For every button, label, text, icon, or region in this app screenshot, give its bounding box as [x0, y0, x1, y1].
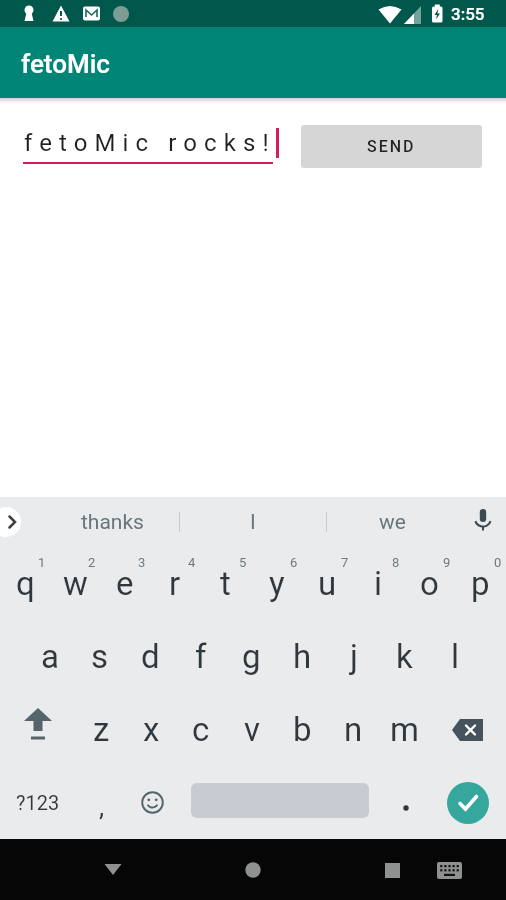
- staticText: 4: [188, 555, 196, 570]
- button[interactable]: a: [25, 620, 75, 693]
- staticText: I: [250, 510, 256, 535]
- staticText: q: [16, 564, 35, 603]
- staticText: w: [63, 564, 88, 603]
- button[interactable]: m: [379, 693, 430, 766]
- button[interactable]: n: [328, 693, 379, 766]
- staticText: 0: [494, 555, 502, 570]
- button[interactable]: [431, 766, 506, 839]
- button[interactable]: q: [0, 547, 50, 620]
- staticText: v: [244, 710, 260, 749]
- staticText: ,: [99, 792, 105, 822]
- staticText: t: [220, 564, 231, 603]
- staticText: u: [318, 564, 337, 603]
- staticText: y: [269, 564, 285, 603]
- button[interactable]: t: [200, 547, 251, 620]
- staticText: 5: [239, 555, 247, 570]
- staticText: ?123: [16, 791, 60, 814]
- button[interactable]: [430, 693, 506, 766]
- button[interactable]: h: [277, 620, 328, 693]
- staticText: a: [41, 637, 59, 676]
- button[interactable]: x: [126, 693, 176, 766]
- staticText: i: [374, 564, 383, 603]
- button[interactable]: [0, 497, 30, 547]
- staticText: 6: [290, 555, 298, 570]
- button[interactable]: [437, 862, 462, 879]
- button[interactable]: w: [50, 547, 100, 620]
- staticText: 3:55: [451, 4, 485, 24]
- button[interactable]: i: [353, 547, 404, 620]
- button[interactable]: b: [277, 693, 328, 766]
- staticText: e: [116, 564, 134, 603]
- staticText: b: [293, 710, 312, 749]
- staticText: l: [451, 637, 460, 676]
- button[interactable]: thanks: [62, 497, 162, 547]
- button[interactable]: SEND: [301, 125, 482, 168]
- button[interactable]: [178, 766, 380, 839]
- staticText: 8: [392, 555, 400, 570]
- staticText: s: [91, 637, 109, 676]
- button[interactable]: c: [176, 693, 226, 766]
- button[interactable]: r: [150, 547, 200, 620]
- button[interactable]: o: [404, 547, 455, 620]
- staticText: o: [420, 564, 439, 603]
- button[interactable]: z: [76, 693, 126, 766]
- button[interactable]: y: [251, 547, 302, 620]
- staticText: h: [293, 637, 312, 676]
- staticText: x: [143, 710, 160, 749]
- staticText: n: [344, 710, 363, 749]
- button[interactable]: f: [175, 620, 226, 693]
- staticText: k: [396, 637, 413, 676]
- staticText: f: [195, 637, 207, 676]
- staticText: 1: [38, 555, 46, 570]
- button[interactable]: k: [379, 620, 430, 693]
- button[interactable]: l: [430, 620, 481, 693]
- staticText: 2: [88, 555, 96, 570]
- staticText: g: [242, 637, 261, 676]
- button[interactable]: p: [455, 547, 506, 620]
- button[interactable]: [104, 864, 122, 876]
- button[interactable]: [245, 862, 261, 878]
- staticText: SEND: [367, 137, 416, 156]
- staticText: m: [390, 710, 419, 749]
- staticText: z: [93, 710, 110, 749]
- button[interactable]: g: [226, 620, 277, 693]
- button[interactable]: u: [302, 547, 353, 620]
- button[interactable]: [23, 125, 273, 164]
- button[interactable]: j: [328, 620, 379, 693]
- staticText: j: [350, 637, 358, 676]
- staticText: thanks: [81, 510, 144, 535]
- button[interactable]: ,: [76, 766, 127, 839]
- button[interactable]: [127, 766, 178, 839]
- button[interactable]: v: [226, 693, 277, 766]
- button[interactable]: [380, 766, 431, 839]
- staticText: c: [192, 710, 210, 749]
- button[interactable]: ?123: [0, 766, 76, 839]
- staticText: r: [169, 564, 181, 603]
- staticText: we: [379, 510, 406, 535]
- button[interactable]: s: [75, 620, 125, 693]
- staticText: fetoMic: [21, 49, 110, 79]
- staticText: 9: [443, 555, 451, 570]
- staticText: d: [141, 637, 160, 676]
- staticText: fetoMic rocks!: [24, 129, 276, 157]
- staticText: 3: [138, 555, 146, 570]
- button[interactable]: I: [228, 497, 278, 547]
- button[interactable]: we: [367, 497, 417, 547]
- button[interactable]: [0, 693, 76, 766]
- button[interactable]: [471, 509, 495, 535]
- button[interactable]: d: [125, 620, 175, 693]
- staticText: p: [471, 564, 490, 603]
- button[interactable]: e: [100, 547, 150, 620]
- staticText: 7: [341, 555, 349, 570]
